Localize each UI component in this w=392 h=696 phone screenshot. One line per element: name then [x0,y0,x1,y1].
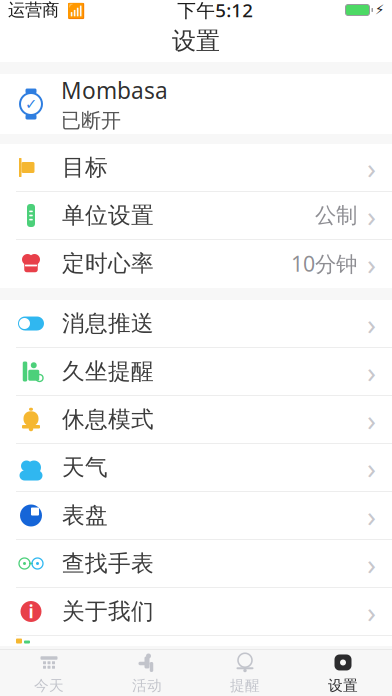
staticText: 单位设置 [62,202,154,229]
staticText: 表盘 [62,502,108,529]
button[interactable]: 单位设置 [0,192,392,240]
button[interactable]: i [0,588,392,636]
staticText: 设置 [172,26,220,56]
staticText: 10分钟 [291,249,357,278]
button[interactable]: 表盘 [0,492,392,540]
staticText: › [367,448,376,487]
staticText: 活动 [132,676,162,694]
staticText: › [367,148,376,187]
staticText: › [367,352,376,391]
staticText: › [367,544,376,583]
staticText: › [367,496,376,535]
button[interactable]: 提醒 [196,650,294,696]
staticText: Mombasa [61,75,168,105]
staticText: 目标 [62,154,108,181]
button[interactable]: 设置 [294,650,392,696]
staticText: › [367,244,376,283]
staticText: › [367,400,376,439]
staticText: 提醒 [230,676,260,694]
staticText: 已断开 [61,108,121,133]
button[interactable]: 休息模式 [0,396,392,444]
staticText: › [367,592,376,631]
staticText: 消息推送 [62,310,154,337]
button[interactable]: 久坐提醒 [0,348,392,396]
button[interactable]: 目标 [0,144,392,192]
staticText: 今天 [34,676,64,694]
staticText: 公制 [315,202,357,229]
staticText: ✓ [25,96,37,112]
staticText: 休息模式 [62,406,154,433]
button[interactable]: 天气 [0,444,392,492]
staticText: 📶 [59,0,85,20]
button[interactable]: 活动 [98,650,196,696]
button[interactable]: 定时心率 [0,240,392,288]
staticText: 下午5:12 [177,0,253,22]
staticText: ⚡︎ [375,2,384,17]
staticText: › [367,304,376,343]
staticText: › [367,196,376,235]
staticText: 定时心率 [62,250,154,277]
button[interactable]: 消息推送 [0,300,392,348]
staticText: i [28,600,33,623]
button[interactable]: ✓ [0,74,392,134]
staticText: 关于我们 [62,598,154,625]
staticText: 设置 [328,676,358,694]
button[interactable]: 今天 [0,650,98,696]
staticText: 查找手表 [62,550,154,577]
staticText: 久坐提醒 [62,358,154,385]
staticText: 运营商 [8,0,59,21]
staticText: 天气 [62,454,108,481]
button[interactable]: 查找手表 [0,540,392,588]
